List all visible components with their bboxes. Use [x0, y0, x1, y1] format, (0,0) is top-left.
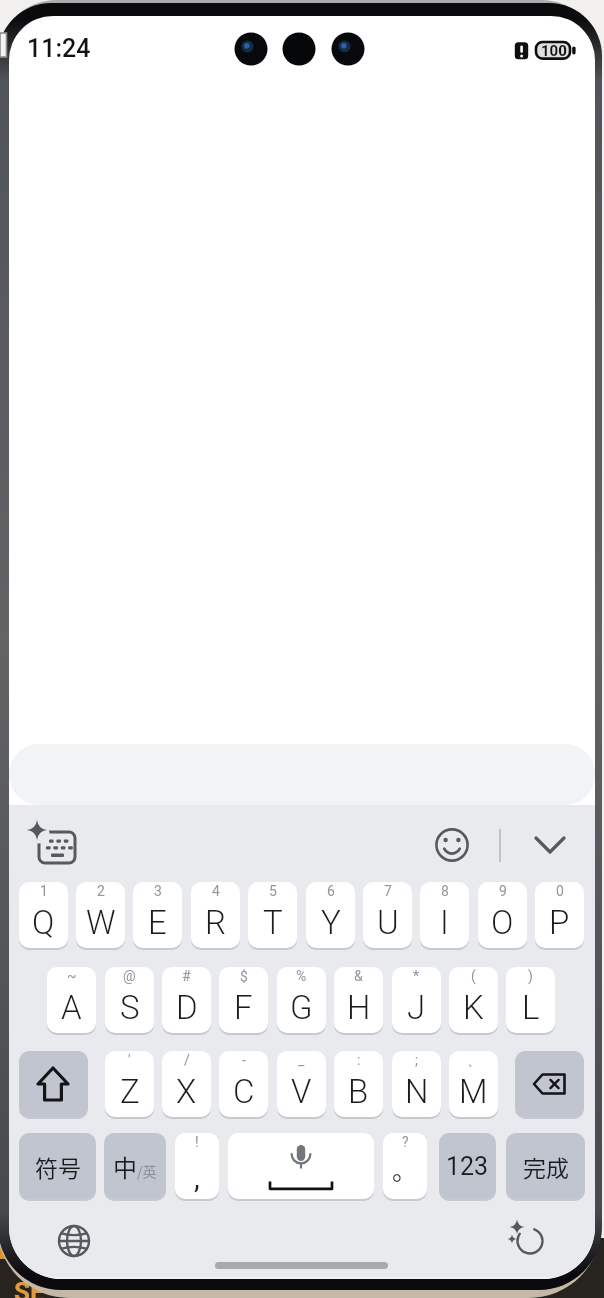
staticText: 0: [556, 883, 564, 899]
staticText: 、: [467, 1052, 481, 1070]
button[interactable]: 符号: [19, 1133, 96, 1199]
staticText: _: [298, 1052, 305, 1068]
staticText: 5: [269, 883, 277, 899]
staticText: Z: [120, 1072, 140, 1111]
button[interactable]: 中/英: [104, 1133, 166, 1199]
staticText: 符号: [35, 1150, 81, 1183]
staticText: 11:24: [27, 34, 91, 63]
staticText: 7: [384, 883, 392, 899]
button[interactable]: 3: [133, 882, 182, 948]
button[interactable]: _: [277, 1051, 326, 1117]
staticText: !: [195, 1134, 199, 1150]
staticText: :: [357, 1052, 361, 1068]
staticText: -: [242, 1052, 246, 1068]
staticText: W: [86, 903, 116, 942]
staticText: SE: [14, 1277, 45, 1298]
staticText: ,: [194, 1161, 200, 1195]
button[interactable]: :: [334, 1051, 383, 1117]
staticText: K: [463, 988, 484, 1027]
staticText: %: [296, 968, 307, 984]
button[interactable]: 完成: [506, 1133, 585, 1199]
button[interactable]: %: [277, 967, 326, 1033]
staticText: Q: [32, 903, 55, 942]
staticText: 4: [212, 883, 220, 899]
staticText: ?: [402, 1134, 409, 1150]
staticText: X: [176, 1072, 197, 1111]
staticText: @: [123, 968, 136, 984]
staticText: ~: [67, 968, 77, 984]
staticText: 。: [392, 1151, 418, 1187]
staticText: V: [291, 1072, 312, 1111]
button[interactable]: @: [105, 967, 154, 1033]
button[interactable]: 6: [306, 882, 355, 948]
staticText: F: [234, 988, 253, 1027]
button[interactable]: 123: [439, 1133, 496, 1199]
staticText: 3: [154, 883, 162, 899]
button[interactable]: ': [105, 1051, 154, 1117]
button[interactable]: 1: [19, 882, 68, 948]
staticText: R: [205, 903, 226, 942]
staticText: $: [240, 968, 248, 984]
button[interactable]: ;: [392, 1051, 441, 1117]
staticText: 2: [97, 883, 105, 899]
staticText: N: [405, 1072, 429, 1111]
button[interactable]: 0: [535, 882, 584, 948]
button[interactable]: #: [162, 967, 211, 1033]
button[interactable]: -: [219, 1051, 268, 1117]
staticText: *: [413, 968, 420, 984]
staticText: /: [184, 1052, 190, 1068]
button[interactable]: &: [334, 967, 383, 1033]
staticText: A: [61, 988, 82, 1027]
button[interactable]: [19, 1051, 88, 1117]
staticText: &: [354, 968, 363, 984]
button[interactable]: 9: [478, 882, 527, 948]
button[interactable]: *: [392, 967, 441, 1033]
staticText: #: [182, 968, 191, 984]
button[interactable]: $: [219, 967, 268, 1033]
staticText: ;: [415, 1052, 418, 1068]
staticText: 1: [40, 883, 48, 899]
button[interactable]: ): [506, 967, 555, 1033]
staticText: S: [120, 988, 140, 1027]
button[interactable]: 2: [76, 882, 125, 948]
staticText: 9: [499, 883, 507, 899]
button[interactable]: 7: [363, 882, 412, 948]
button[interactable]: [515, 1051, 584, 1117]
staticText: ): [528, 968, 533, 984]
staticText: 8: [441, 883, 449, 899]
staticText: B: [348, 1072, 369, 1111]
button[interactable]: 、: [449, 1051, 498, 1117]
button[interactable]: ?: [383, 1133, 427, 1199]
button[interactable]: 4: [191, 882, 240, 948]
staticText: H: [347, 988, 371, 1027]
staticText: M: [459, 1072, 488, 1111]
staticText: G: [290, 988, 313, 1027]
button[interactable]: ~: [47, 967, 96, 1033]
button[interactable]: !: [175, 1133, 219, 1199]
button[interactable]: 5: [248, 882, 297, 948]
staticText: U: [377, 903, 399, 942]
staticText: ': [128, 1052, 131, 1068]
staticText: P: [549, 903, 570, 942]
staticText: L: [522, 988, 540, 1027]
staticText: J: [407, 988, 426, 1027]
staticText: D: [176, 988, 198, 1027]
staticText: Y: [321, 903, 341, 942]
staticText: 6: [327, 883, 335, 899]
staticText: O: [491, 903, 514, 942]
staticText: 完成: [523, 1150, 569, 1183]
staticText: E: [148, 903, 167, 942]
button[interactable]: [228, 1133, 374, 1199]
button[interactable]: 8: [420, 882, 469, 948]
staticText: I: [440, 903, 449, 942]
staticText: 中/英: [113, 1149, 157, 1184]
button[interactable]: (: [449, 967, 498, 1033]
staticText: T: [263, 903, 283, 942]
staticText: 123: [446, 1152, 489, 1181]
staticText: C: [233, 1072, 255, 1111]
staticText: (: [471, 968, 476, 984]
staticText: 100: [541, 42, 567, 60]
button[interactable]: /: [162, 1051, 211, 1117]
